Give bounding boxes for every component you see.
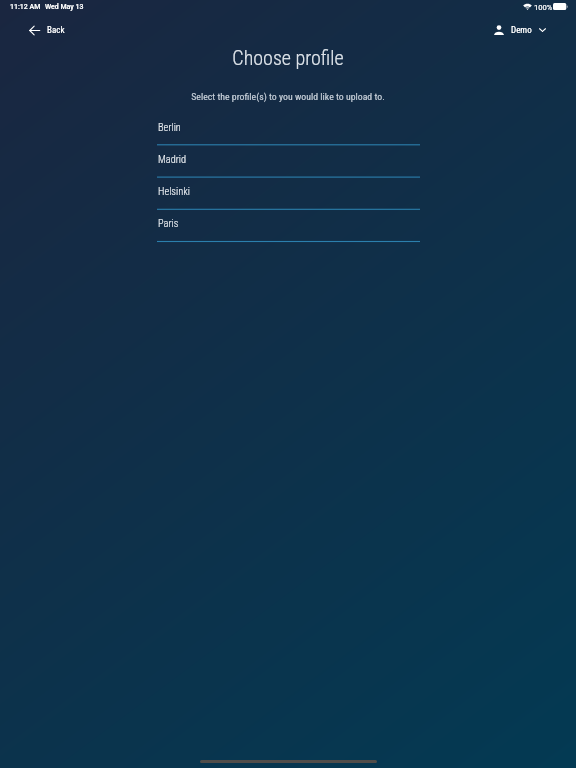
staticText: Berlin (158, 121, 181, 133)
button[interactable]: Madrid (157, 145, 420, 177)
staticText: Demo (511, 25, 532, 36)
staticText: Wed May 13 (45, 3, 84, 11)
staticText: 11:12 AM (10, 3, 41, 11)
staticText: Choose profile (0, 46, 576, 69)
staticText: Madrid (158, 153, 187, 165)
other: Expand profile menu (539, 28, 546, 32)
button[interactable]: Demo (494, 15, 546, 45)
staticText: Back (47, 25, 65, 36)
staticText: Select the profile(s) to you would like … (0, 91, 576, 102)
button[interactable]: Paris (157, 209, 420, 241)
staticText: 100% (534, 3, 553, 12)
staticText: Helsinki (158, 185, 190, 197)
button[interactable]: Berlin (157, 113, 420, 145)
button[interactable]: Helsinki (157, 177, 420, 209)
button[interactable]: Back (29, 15, 65, 45)
staticText: Paris (158, 217, 179, 229)
other: Back (29, 25, 40, 36)
